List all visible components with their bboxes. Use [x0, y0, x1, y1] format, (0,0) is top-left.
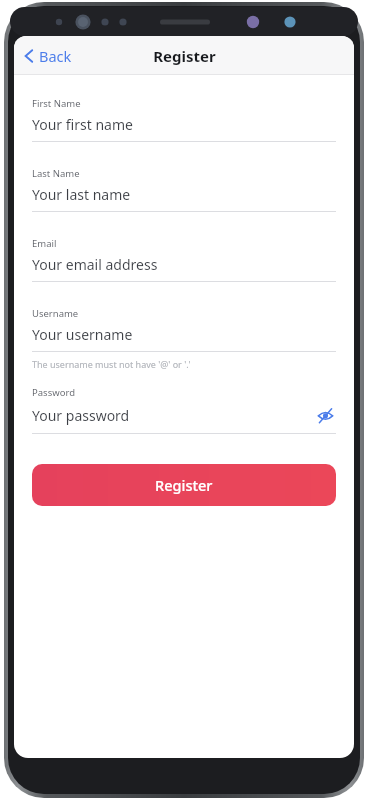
staticText: First Name: [32, 97, 81, 110]
button[interactable]: Last Name: [32, 167, 336, 212]
staticText: Back: [39, 46, 72, 66]
staticText: The username must not have '@' or '.': [32, 358, 191, 370]
staticText: Your password: [32, 406, 314, 425]
button[interactable]: Back: [18, 41, 78, 71]
staticText: Register: [155, 475, 213, 495]
button[interactable]: Email: [32, 237, 336, 282]
button[interactable]: Show password: [314, 404, 336, 426]
button[interactable]: Username: [32, 307, 336, 352]
staticText: Register: [153, 46, 216, 66]
staticText: Username: [32, 307, 79, 320]
staticText: Your email address: [32, 255, 336, 274]
button[interactable]: Register: [32, 464, 336, 506]
staticText: Last Name: [32, 167, 80, 180]
button[interactable]: First Name: [32, 97, 336, 142]
button[interactable]: Password: [32, 386, 336, 434]
staticText: Your first name: [32, 115, 336, 134]
staticText: Email: [32, 237, 57, 250]
staticText: Password: [32, 386, 75, 399]
staticText: Your last name: [32, 185, 336, 204]
staticText: Your username: [32, 325, 336, 344]
